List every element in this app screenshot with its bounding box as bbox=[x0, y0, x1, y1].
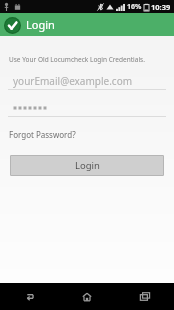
staticText: Use Your Old Locumcheck Login Credential… bbox=[9, 55, 145, 64]
button[interactable]: App icon bbox=[2, 15, 22, 35]
button[interactable]: yourEmail@example.com bbox=[8, 73, 166, 90]
staticText: Forgot Password? bbox=[9, 129, 76, 140]
button[interactable]: Recents bbox=[116, 283, 174, 310]
staticText: 16% bbox=[127, 2, 142, 12]
staticText: yourEmail@example.com bbox=[13, 74, 133, 88]
staticText: Login bbox=[26, 17, 55, 32]
button[interactable]: Login bbox=[10, 155, 164, 176]
staticText: Login bbox=[75, 159, 100, 172]
button[interactable]: Home bbox=[58, 283, 116, 310]
button[interactable]: Back bbox=[0, 283, 58, 310]
button[interactable]: Forgot Password? bbox=[8, 128, 77, 141]
button[interactable] bbox=[8, 100, 166, 117]
staticText: 10:39 bbox=[151, 2, 171, 12]
